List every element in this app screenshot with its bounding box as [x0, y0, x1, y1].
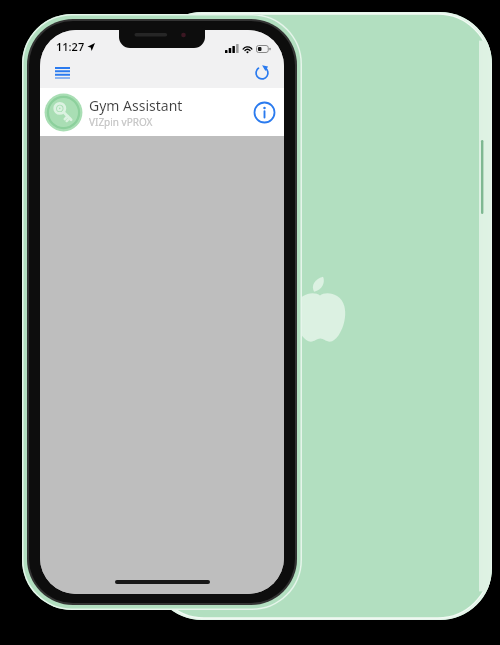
button[interactable]: Refresh: [247, 58, 277, 88]
staticText: 11:27: [56, 39, 85, 54]
staticText: Gym Assistant: [89, 96, 183, 115]
button[interactable]: Menu: [47, 58, 77, 88]
staticText: VIZpin vPROX: [89, 115, 153, 129]
button[interactable]: Gym Assistant: [40, 88, 284, 136]
button[interactable]: Info: [247, 95, 281, 129]
